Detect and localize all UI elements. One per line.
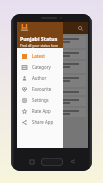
button[interactable]: Favourite <box>17 83 63 94</box>
button[interactable]: Recent apps <box>23 157 41 166</box>
staticText: Rate App <box>32 108 51 114</box>
button[interactable]: Punjabi Status <box>17 22 63 48</box>
staticText: Find all your status here <box>20 43 59 48</box>
staticText: Share App <box>32 119 54 125</box>
staticText: Settings <box>32 97 49 103</box>
staticText: Favourite <box>32 86 52 92</box>
staticText: Latest <box>32 53 45 59</box>
button[interactable]: Back <box>63 157 81 166</box>
button[interactable]: Category <box>17 61 63 72</box>
button[interactable]: Rate App <box>17 105 63 116</box>
button[interactable]: Settings <box>17 94 63 105</box>
button[interactable] <box>19 75 86 87</box>
button[interactable] <box>19 89 86 95</box>
staticText: Punjabi Status <box>20 35 58 42</box>
button[interactable]: Search <box>76 24 85 33</box>
button[interactable]: Share App <box>17 116 63 127</box>
button[interactable]: Author <box>17 72 63 83</box>
staticText: Category <box>32 64 51 70</box>
button[interactable] <box>19 50 86 59</box>
button[interactable]: Latest <box>17 50 63 61</box>
staticText: Author <box>32 75 47 81</box>
button[interactable] <box>19 61 86 73</box>
button[interactable] <box>19 108 86 117</box>
button[interactable] <box>19 97 86 106</box>
button[interactable]: Home <box>41 158 63 166</box>
button[interactable] <box>19 36 86 48</box>
